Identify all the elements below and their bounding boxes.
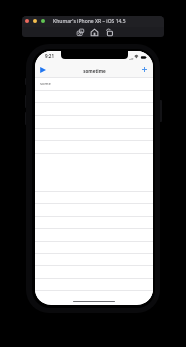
staticText: 9:21 — [45, 53, 54, 59]
button[interactable] — [35, 276, 153, 289]
staticText: Khumar's iPhone XR – iOS 14.5 — [53, 18, 126, 25]
staticText: some — [40, 81, 51, 87]
button[interactable] — [35, 264, 153, 276]
button[interactable]: Screenshot — [75, 27, 85, 37]
button[interactable] — [35, 289, 153, 303]
button[interactable]: Rotate — [104, 27, 114, 37]
button[interactable]: Add — [139, 64, 150, 75]
button[interactable] — [35, 102, 153, 115]
button[interactable] — [35, 153, 153, 191]
button[interactable] — [35, 216, 153, 228]
button[interactable]: Play — [37, 64, 48, 75]
button[interactable] — [35, 240, 153, 252]
button[interactable] — [35, 89, 153, 102]
button[interactable] — [35, 252, 153, 264]
button[interactable] — [35, 203, 153, 216]
button[interactable] — [35, 128, 153, 141]
button[interactable] — [35, 77, 153, 89]
button[interactable]: Home — [89, 27, 99, 37]
button[interactable] — [35, 191, 153, 203]
staticText: sometime — [83, 68, 106, 74]
button[interactable] — [35, 228, 153, 240]
button[interactable] — [35, 115, 153, 128]
